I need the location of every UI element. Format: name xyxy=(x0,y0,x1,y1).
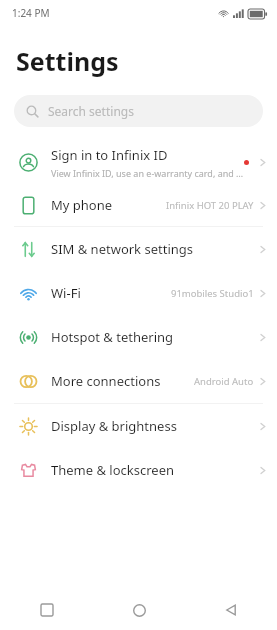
staticText: Display & brightness xyxy=(51,417,177,435)
staticText: View Infinix ID, use an e-warranty card,… xyxy=(51,167,244,179)
button[interactable]: Search settings xyxy=(14,95,263,127)
staticText: Settings xyxy=(16,44,119,78)
button[interactable]: My phone xyxy=(0,184,277,226)
staticText: More connections xyxy=(51,372,161,390)
button[interactable]: Recent apps xyxy=(0,590,93,630)
staticText: Sign in to Infinix ID xyxy=(51,146,168,164)
button[interactable]: Home xyxy=(93,590,185,630)
staticText: Android Auto xyxy=(194,375,254,388)
button[interactable]: More connections xyxy=(0,359,277,403)
button[interactable]: Sign in to Infinix ID xyxy=(0,140,277,184)
staticText: 1:24 PM xyxy=(12,6,50,20)
staticText: Theme & lockscreen xyxy=(51,461,175,479)
staticText: SIM & network settings xyxy=(51,240,193,258)
staticText: 91mobiles Studio1 xyxy=(171,287,254,300)
button[interactable]: Display & brightness xyxy=(0,404,277,448)
button[interactable]: Back xyxy=(185,590,277,630)
staticText: Search settings xyxy=(48,103,134,119)
button[interactable]: Theme & lockscreen xyxy=(0,448,277,492)
staticText: Wi-Fi xyxy=(51,284,81,302)
button[interactable]: Hotspot & tethering xyxy=(0,315,277,359)
button[interactable]: SIM & network settings xyxy=(0,227,277,271)
staticText: Hotspot & tethering xyxy=(51,328,174,346)
staticText: My phone xyxy=(51,196,113,214)
staticText: Infinix HOT 20 PLAY xyxy=(166,199,254,212)
button[interactable]: Wi-Fi xyxy=(0,271,277,315)
